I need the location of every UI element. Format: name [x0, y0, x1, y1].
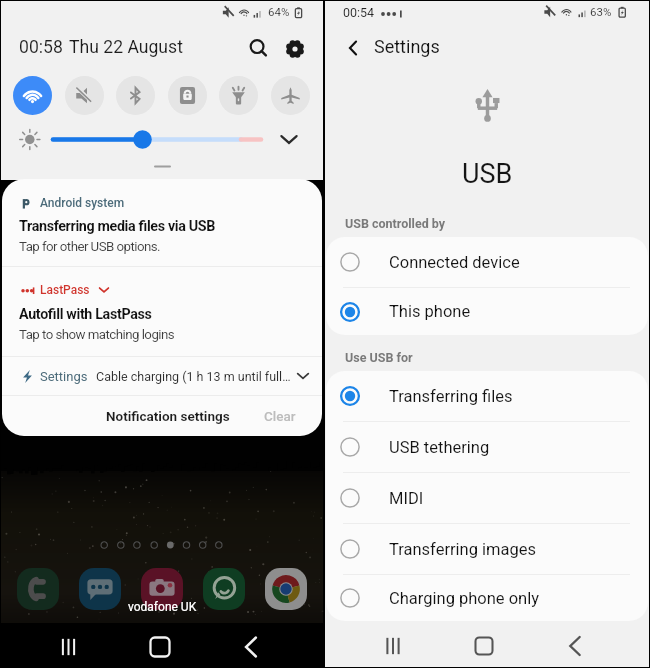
button[interactable]: Transferring images [326, 524, 648, 574]
button[interactable] [2, 179, 322, 267]
staticText: Transferring images [389, 540, 537, 559]
staticText: USB [462, 158, 513, 184]
button[interactable] [141, 568, 183, 610]
staticText: Settings [374, 36, 440, 57]
staticText: Clear [264, 408, 296, 424]
staticText: Transferring files [389, 387, 513, 406]
button[interactable]: Notification settings [98, 400, 238, 432]
staticText: 00:54 [343, 5, 375, 20]
button[interactable]: Settings [2, 357, 322, 395]
button[interactable] [265, 568, 307, 610]
staticText: Thu 22 August [69, 37, 183, 58]
button[interactable]: Flashlight [219, 76, 258, 115]
button[interactable]: Charging phone only [326, 575, 648, 621]
button[interactable]: Secure folder [168, 76, 207, 115]
staticText: Android system [40, 196, 125, 210]
button[interactable] [203, 568, 245, 610]
button[interactable]: Settings [280, 34, 310, 64]
button[interactable]: Wi-Fi [13, 76, 52, 115]
button[interactable]: USB tethering [326, 422, 648, 472]
staticText: MIDI [389, 489, 424, 508]
button[interactable]: Connected device [326, 237, 648, 287]
staticText: 64% [268, 5, 290, 18]
staticText: Cable charging (1 h 13 m until fully c… [96, 369, 296, 384]
button[interactable] [17, 568, 59, 610]
staticText: Settings [40, 369, 88, 384]
button[interactable]: Search [244, 34, 274, 64]
staticText: vodafone UK [128, 600, 197, 614]
button[interactable]: This phone [326, 288, 648, 335]
staticText: USB tethering [389, 438, 490, 457]
staticText: USB controlled by [345, 216, 446, 231]
staticText: Tap to show matching logins [19, 327, 175, 343]
button[interactable]: Bluetooth [116, 76, 155, 115]
button[interactable]: Transferring files [326, 371, 648, 421]
button[interactable]: Back [333, 29, 373, 69]
staticText: Notification settings [106, 408, 230, 424]
staticText: Connected device [389, 253, 520, 272]
staticText: Charging phone only [389, 589, 540, 608]
staticText: This phone [389, 302, 471, 321]
staticText: Transferring media files via USB [19, 218, 216, 235]
staticText: Tap for other USB options. [19, 239, 161, 255]
staticText: Autofill with LastPass [19, 306, 152, 323]
staticText: 63% [590, 5, 612, 18]
staticText: LastPass [40, 283, 90, 297]
button[interactable]: Clear [256, 400, 304, 432]
button[interactable] [79, 568, 121, 610]
staticText: 00:58 [19, 37, 63, 58]
button[interactable]: MIDI [326, 473, 648, 523]
staticText: Use USB for [345, 350, 413, 365]
button[interactable] [2, 267, 322, 355]
button[interactable]: Airplane mode [271, 76, 310, 115]
button[interactable]: Mute [65, 76, 104, 115]
